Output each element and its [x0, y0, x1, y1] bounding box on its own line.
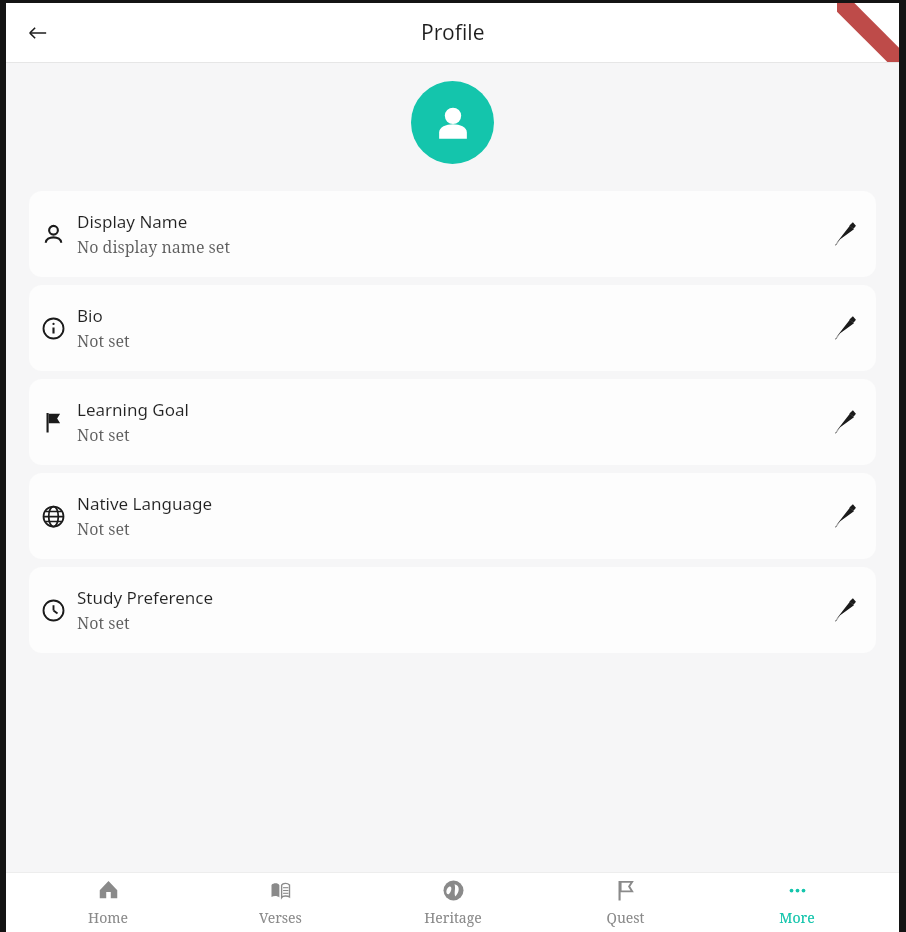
- staticText: No display name set: [77, 236, 231, 258]
- staticText: Study Preference: [77, 586, 214, 609]
- staticText: Heritage: [424, 908, 482, 927]
- button[interactable]: Verses: [210, 873, 350, 932]
- button[interactable]: Edit Bio: [814, 285, 876, 371]
- staticText: Home: [88, 908, 128, 927]
- button[interactable]: Native Language: [29, 473, 876, 559]
- button[interactable]: Edit Display Name: [814, 191, 876, 277]
- button[interactable]: Learning Goal: [29, 379, 876, 465]
- staticText: Learning Goal: [77, 398, 189, 421]
- staticText: Profile: [421, 18, 485, 47]
- button[interactable]: Heritage: [383, 873, 523, 932]
- button[interactable]: Quest: [555, 873, 695, 932]
- button[interactable]: Home: [38, 873, 178, 932]
- staticText: Not set: [77, 612, 130, 634]
- button[interactable]: More: [727, 873, 867, 932]
- staticText: More: [779, 908, 815, 927]
- staticText: Not set: [77, 424, 130, 446]
- staticText: Not set: [77, 330, 130, 352]
- button[interactable]: Study Preference: [29, 567, 876, 653]
- staticText: Quest: [606, 908, 645, 927]
- button[interactable]: Bio: [29, 285, 876, 371]
- button[interactable]: Profile photo: [411, 81, 494, 164]
- staticText: Verses: [259, 908, 302, 927]
- staticText: Display Name: [77, 210, 188, 233]
- staticText: Native Language: [77, 492, 213, 515]
- button[interactable]: Back: [14, 9, 62, 57]
- staticText: Not set: [77, 518, 130, 540]
- button[interactable]: Edit Learning Goal: [814, 379, 876, 465]
- staticText: Bio: [77, 304, 103, 327]
- button[interactable]: Display Name: [29, 191, 876, 277]
- button[interactable]: Edit Native Language: [814, 473, 876, 559]
- button[interactable]: Edit Study Preference: [814, 567, 876, 653]
